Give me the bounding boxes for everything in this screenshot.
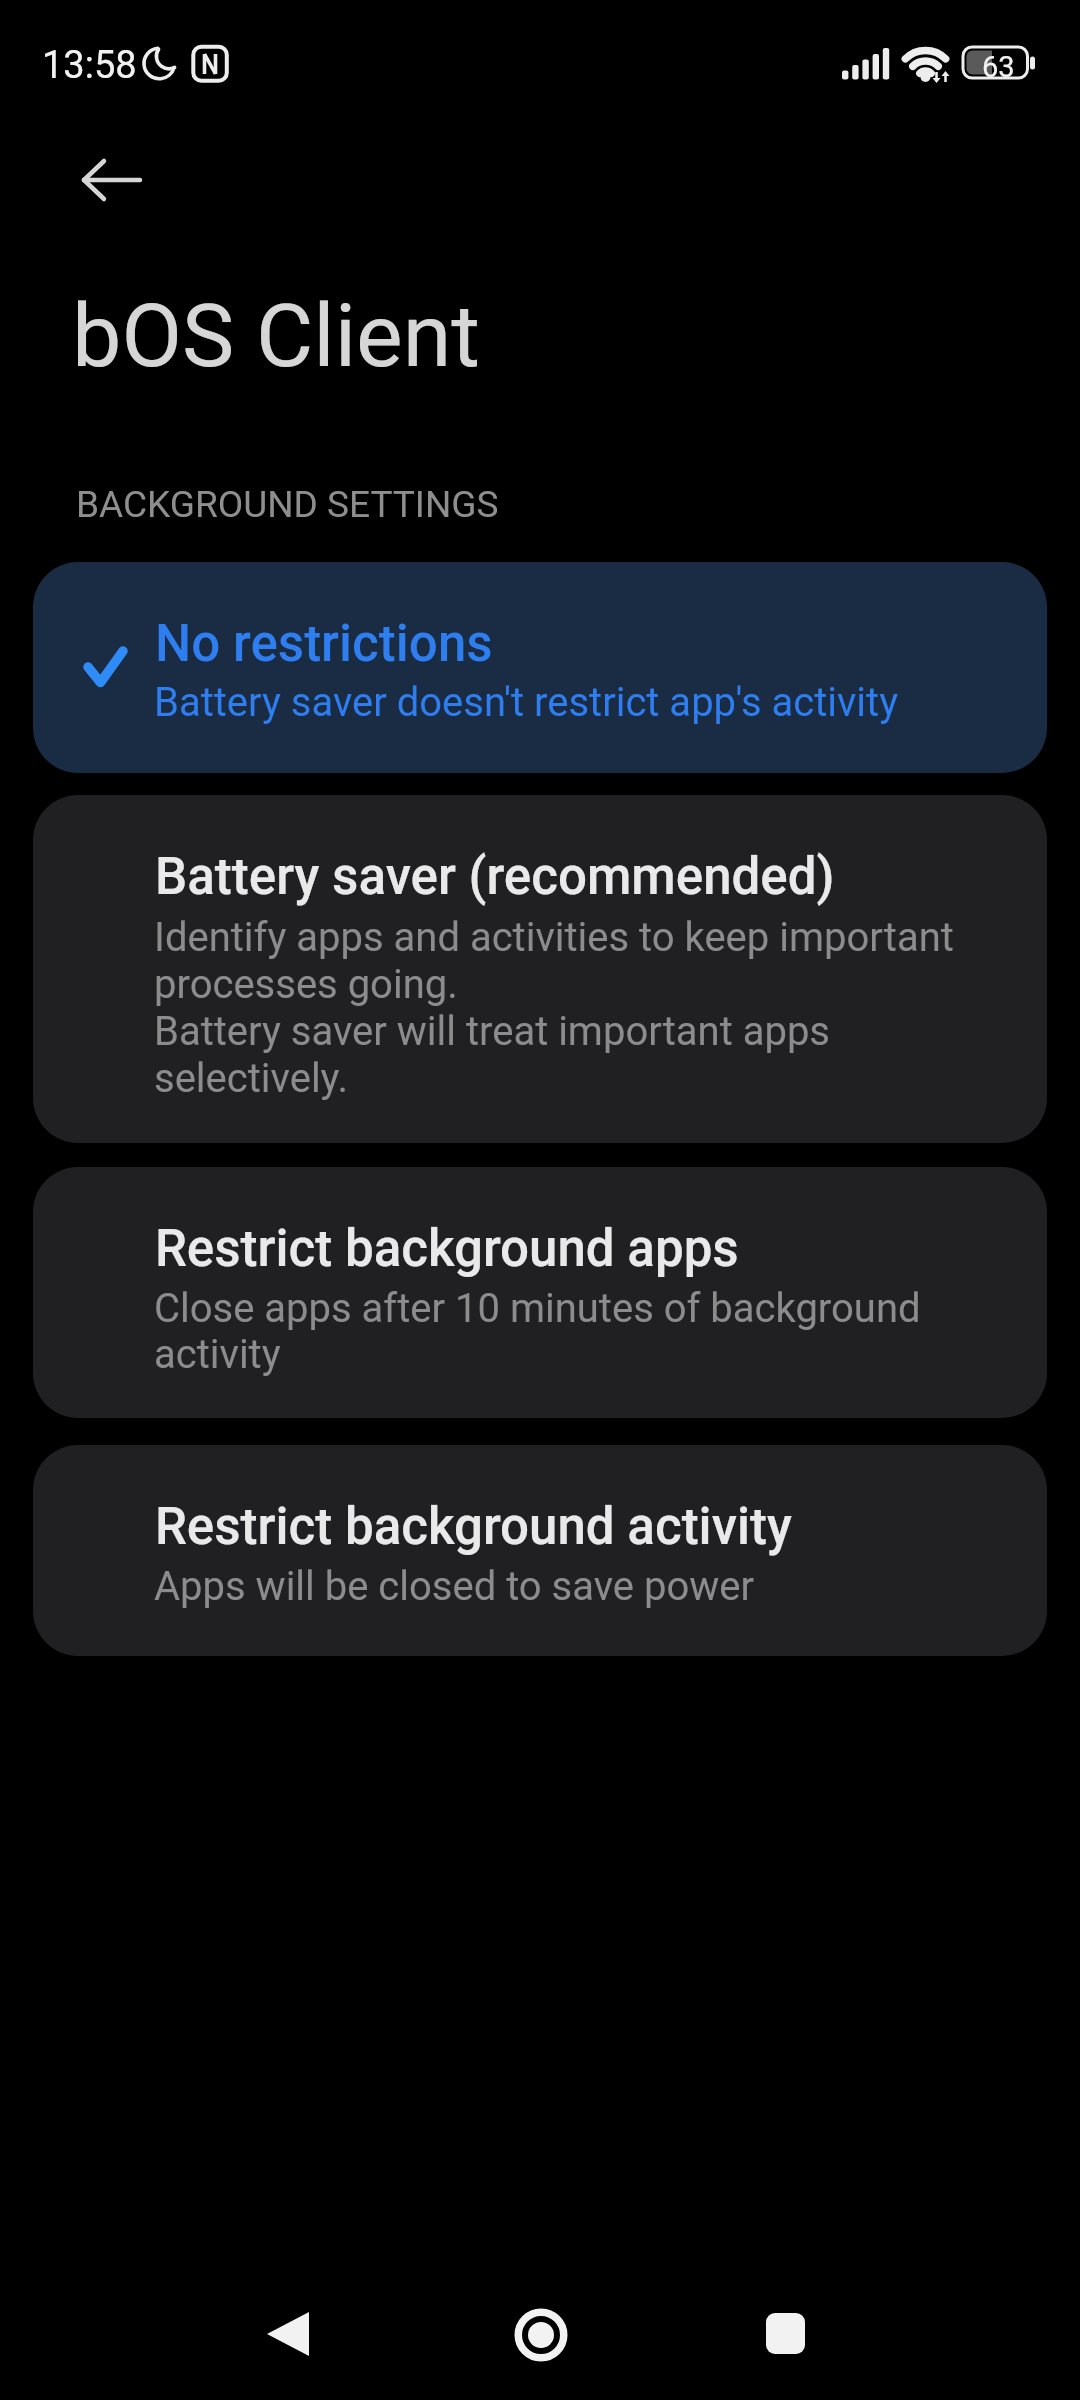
staticText: processes going. [154, 961, 458, 1008]
staticText: bOS Client [72, 284, 481, 387]
button[interactable] [243, 2310, 339, 2358]
staticText: No restrictions [155, 614, 493, 674]
staticText: activity [154, 1331, 281, 1378]
staticText: Close apps after 10 minutes of backgroun… [154, 1285, 921, 1332]
staticText: Battery saver will treat important apps [154, 1008, 831, 1055]
staticText: Apps will be closed to save power [154, 1563, 755, 1610]
button[interactable]: Restrict background apps [33, 1167, 1047, 1418]
button[interactable] [493, 2310, 589, 2358]
button[interactable]: No restrictions [33, 562, 1047, 773]
staticText: Identify apps and activities to keep imp… [154, 914, 954, 961]
staticText: Battery saver (recommended) [155, 847, 835, 907]
button[interactable] [67, 136, 155, 224]
staticText: 63 [982, 50, 1015, 84]
staticText: selectively. [154, 1055, 348, 1102]
button[interactable]: Battery saver (recommended) [33, 795, 1047, 1143]
staticText: Restrict background apps [155, 1219, 739, 1279]
staticText: BACKGROUND SETTINGS [76, 483, 499, 526]
staticText: Restrict background activity [155, 1497, 792, 1557]
staticText: 13:58 [42, 43, 137, 88]
button[interactable] [743, 2310, 839, 2358]
button[interactable]: Restrict background activity [33, 1445, 1047, 1656]
staticText: Battery saver doesn't restrict app's act… [154, 679, 899, 726]
